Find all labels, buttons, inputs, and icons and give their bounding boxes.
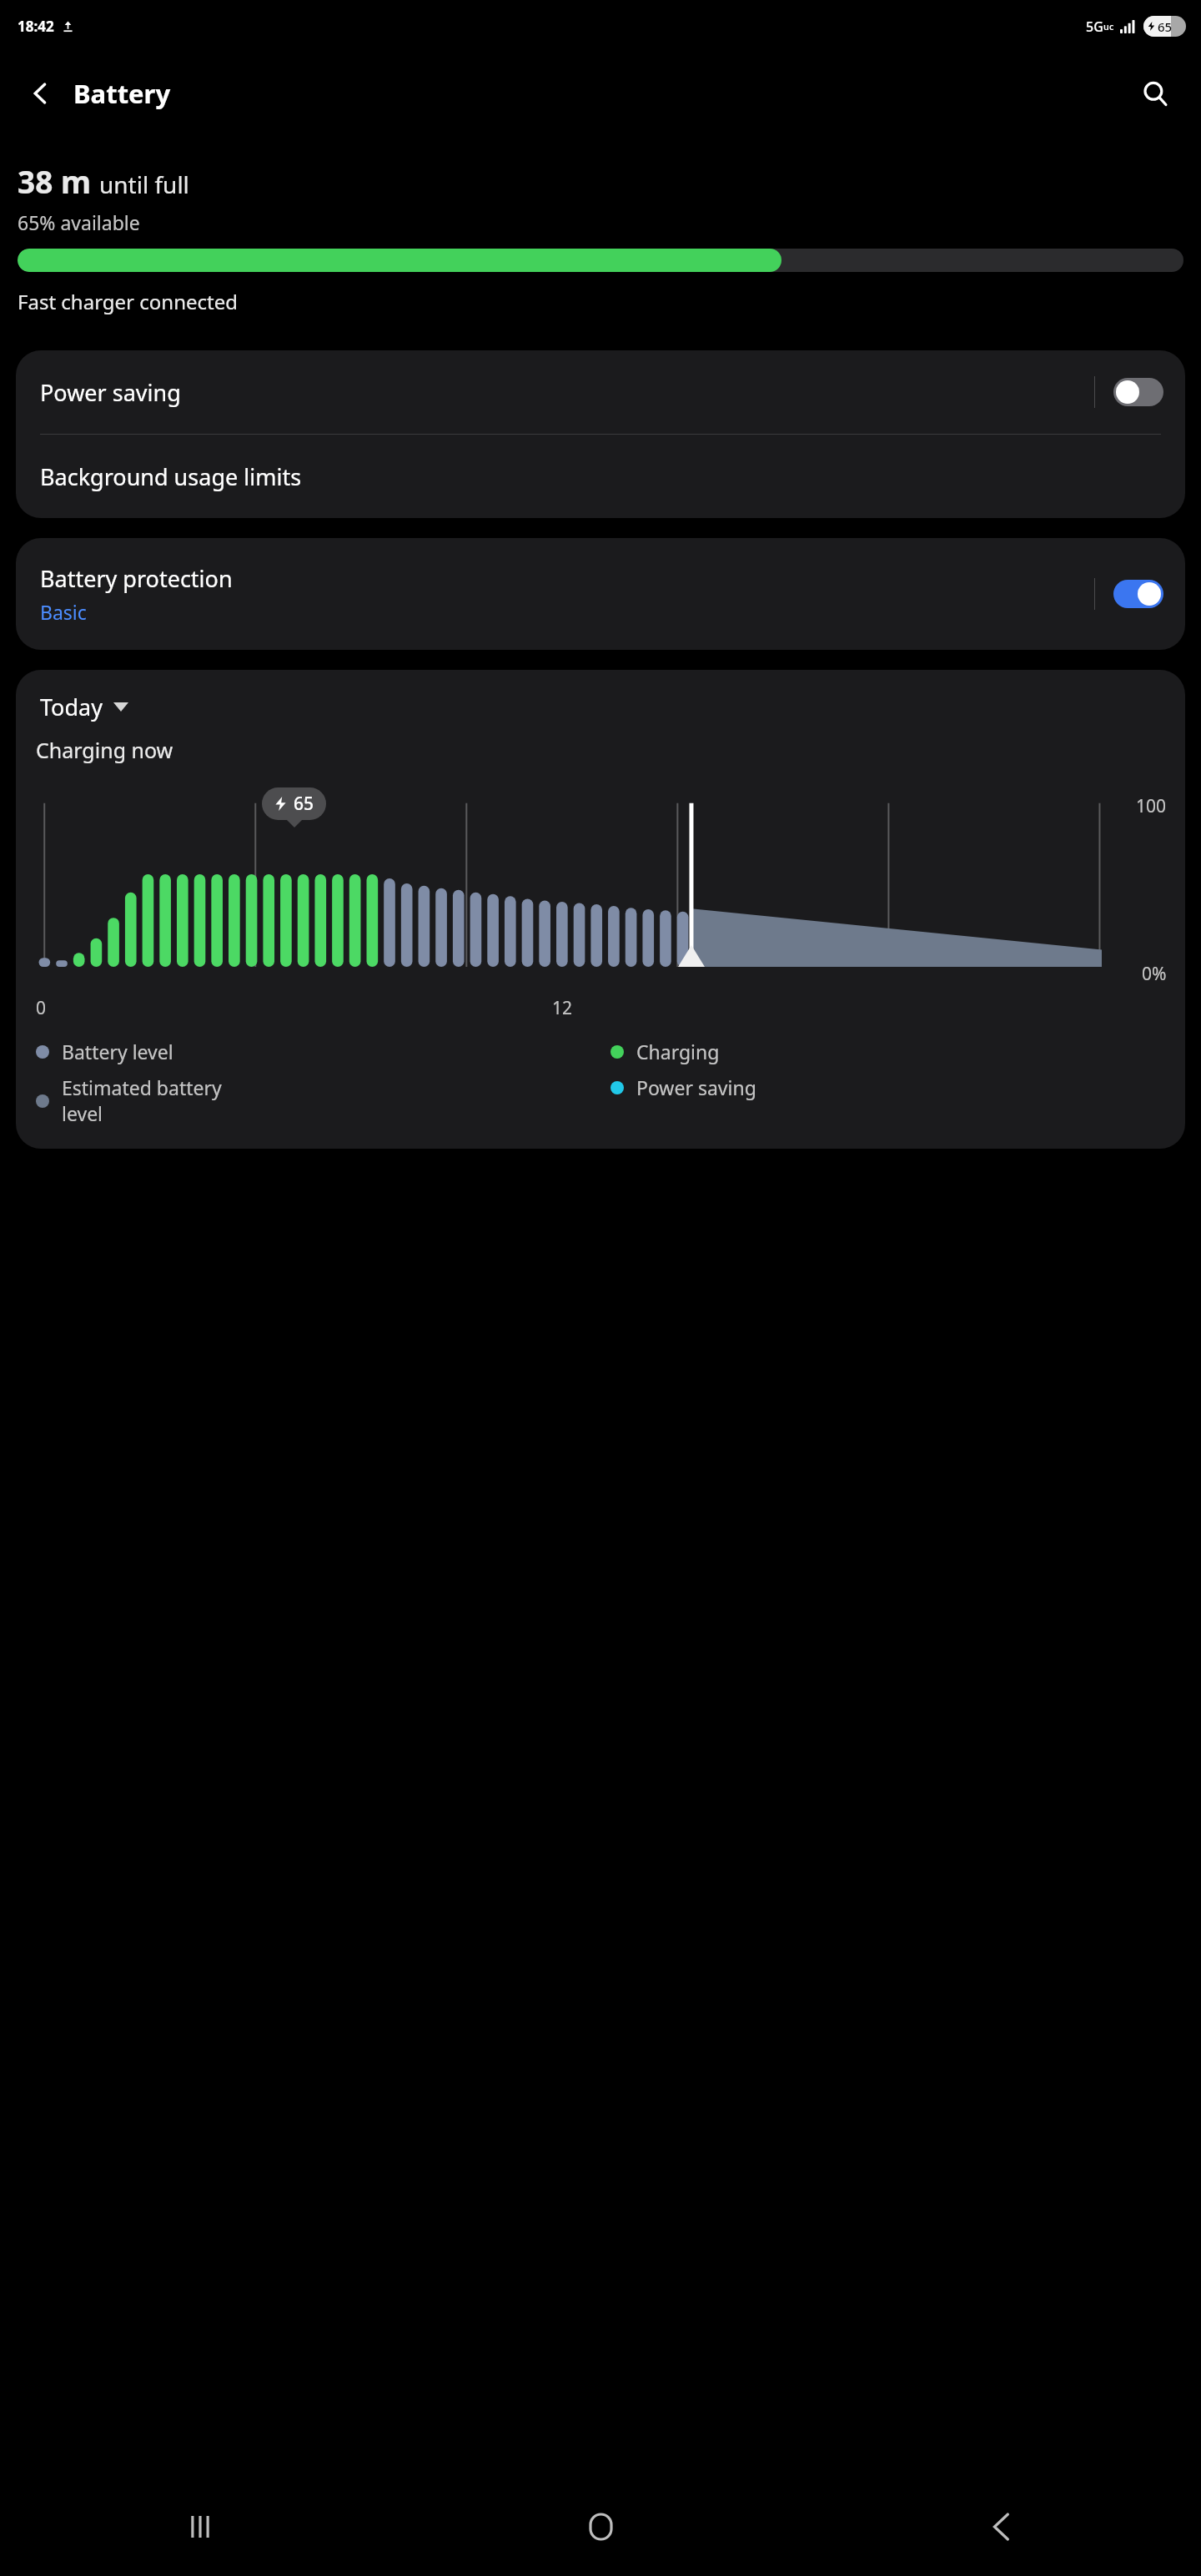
button[interactable]: Battery protection — [16, 538, 1185, 650]
staticText: uc — [1103, 20, 1114, 33]
button[interactable]: Back — [18, 71, 63, 116]
staticText: Fast charger connected — [18, 288, 238, 315]
button[interactable]: Search — [1131, 69, 1179, 118]
staticText: 65% available — [18, 209, 140, 235]
staticText: until full — [99, 169, 189, 200]
staticText: Battery level — [62, 1039, 173, 1064]
button[interactable]: Power saving toggle — [1113, 378, 1163, 406]
staticText: Power saving — [636, 1074, 756, 1100]
staticText: Charging — [636, 1039, 720, 1064]
staticText: Today — [40, 692, 103, 722]
button[interactable]: Today — [40, 692, 128, 722]
staticText: 65 — [294, 792, 314, 816]
staticText: 38 m — [18, 160, 92, 202]
button[interactable]: Back — [801, 2478, 1201, 2576]
staticText: Charging now — [36, 736, 173, 764]
staticText: Basic — [40, 599, 87, 625]
staticText: 65 — [1158, 18, 1173, 35]
button[interactable]: Battery protection toggle — [1113, 580, 1163, 608]
staticText: 5G — [1086, 18, 1103, 36]
staticText: 0 — [36, 996, 47, 1020]
button[interactable]: Background usage limits — [16, 435, 1185, 518]
staticText: Power saving — [40, 377, 1094, 408]
button[interactable]: Recents — [0, 2478, 400, 2576]
staticText: 12 — [552, 996, 573, 1020]
staticText: Background usage limits — [40, 461, 302, 492]
staticText: Battery — [73, 76, 171, 111]
button[interactable]: Power saving — [16, 350, 1185, 434]
staticText: Battery protection — [40, 563, 233, 594]
staticText: 100 — [1136, 794, 1167, 818]
staticText: Estimated battery level — [62, 1074, 222, 1127]
staticText: 0% — [1142, 962, 1167, 986]
button[interactable]: Home — [400, 2478, 801, 2576]
staticText: 18:42 — [18, 17, 54, 36]
